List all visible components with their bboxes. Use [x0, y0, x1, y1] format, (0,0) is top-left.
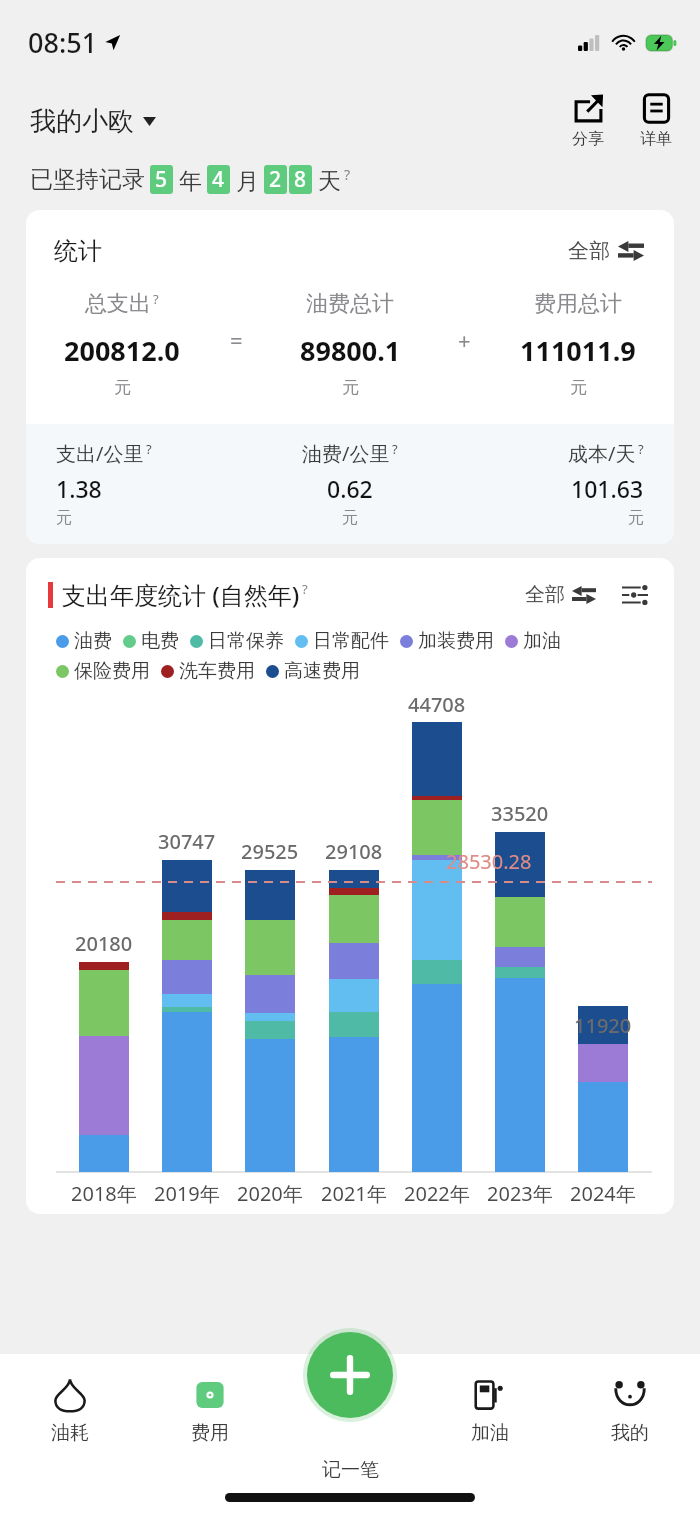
staticText: 费用 [191, 1421, 229, 1445]
staticText: 加油 [523, 629, 561, 653]
staticText: 元 [342, 377, 359, 398]
staticText: 油费/公里 [302, 440, 390, 467]
button[interactable]: 油耗 [0, 1374, 140, 1449]
staticText: 2022年 [404, 1180, 470, 1207]
staticText: 2019年 [154, 1180, 220, 1207]
staticText: 20180 [75, 930, 133, 957]
staticText: 年 [173, 164, 202, 195]
staticText: 高速费用 [284, 659, 360, 683]
staticText: 成本/天 [568, 440, 636, 467]
staticText: 08:51 [28, 24, 98, 61]
staticText: ? [146, 440, 152, 458]
staticText: 油费总计 [306, 290, 394, 318]
button[interactable]: 我的小欧 [30, 101, 156, 142]
staticText: 101.63 [571, 473, 644, 504]
staticText: 28530.28 [446, 848, 532, 875]
staticText: 我的 [611, 1421, 649, 1445]
staticText: 元 [628, 508, 644, 528]
staticText: 加油 [471, 1421, 509, 1445]
staticText: 电费 [141, 629, 179, 653]
staticText: 全部 [568, 238, 610, 264]
staticText: 统计 [54, 236, 102, 266]
staticText: ? [638, 440, 644, 458]
button[interactable]: Add record [307, 1332, 393, 1418]
staticText: 支出年度统计 (自然年) [62, 578, 300, 611]
staticText: 29525 [241, 838, 299, 865]
button[interactable]: 全部 [562, 232, 650, 270]
staticText: 洗车费用 [179, 659, 255, 683]
staticText: ? [153, 290, 159, 308]
staticText: 89800.1 [300, 332, 401, 369]
staticText: 分享 [572, 129, 604, 149]
staticText: 记一笔 [322, 1458, 379, 1482]
staticText: 日常配件 [313, 629, 389, 653]
button[interactable]: 分享 [568, 91, 608, 151]
staticText: 已坚持记录 [30, 165, 145, 194]
staticText: + [458, 325, 471, 355]
staticText: ? [392, 440, 398, 458]
staticText: 元 [342, 508, 358, 528]
staticText: 我的小欧 [30, 105, 134, 138]
staticText: 总支出 [85, 290, 151, 318]
staticText: 30747 [158, 828, 216, 855]
staticText: 全部 [525, 582, 565, 607]
staticText: 33520 [491, 800, 549, 827]
staticText: 2024年 [570, 1180, 636, 1207]
button[interactable]: 我的 [560, 1374, 700, 1449]
staticText: 1.38 [56, 473, 102, 504]
staticText: = [230, 325, 243, 355]
staticText: 11920 [574, 1012, 632, 1039]
staticText: 2020年 [237, 1180, 303, 1207]
staticText: 油耗 [51, 1421, 89, 1445]
button[interactable]: Filter [618, 580, 652, 610]
button[interactable]: 详单 [636, 91, 676, 151]
staticText: 8 [294, 165, 307, 194]
staticText: 油费 [74, 629, 112, 653]
staticText: 保险费用 [74, 659, 150, 683]
staticText: 2021年 [321, 1180, 387, 1207]
staticText: 5 [155, 165, 168, 194]
staticText: 2023年 [487, 1180, 553, 1207]
staticText: 元 [114, 377, 131, 398]
staticText: 0.62 [327, 473, 373, 504]
staticText: 200812.0 [64, 332, 180, 369]
staticText: 日常保养 [208, 629, 284, 653]
staticText: 费用总计 [534, 290, 622, 318]
staticText: 2 [269, 165, 282, 194]
button[interactable]: 全部 [521, 578, 600, 611]
staticText: 元 [570, 377, 587, 398]
staticText: 月 [230, 164, 259, 195]
staticText: 元 [56, 508, 72, 528]
staticText: 加装费用 [418, 629, 494, 653]
staticText: 4 [212, 165, 225, 194]
staticText: ? [302, 580, 308, 598]
staticText: 44708 [408, 691, 466, 718]
staticText: 详单 [640, 129, 672, 149]
button[interactable]: 费用 [140, 1374, 280, 1449]
staticText: ? [344, 165, 351, 184]
staticText: 2018年 [71, 1180, 137, 1207]
button[interactable]: 加油 [420, 1374, 560, 1449]
staticText: 111011.9 [520, 332, 636, 369]
staticText: 29108 [325, 838, 383, 865]
staticText: 支出/公里 [56, 440, 144, 467]
staticText: 天 [312, 164, 341, 195]
